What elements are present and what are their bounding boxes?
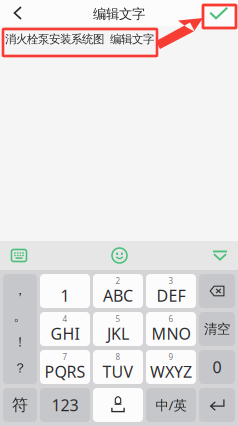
- button[interactable]: 9: [146, 350, 196, 384]
- staticText: PQRS: [44, 361, 85, 382]
- button[interactable]: 3: [146, 274, 196, 308]
- staticText: 0: [212, 356, 221, 378]
- staticText: JKL: [107, 323, 129, 344]
- staticText: 。: [13, 308, 26, 324]
- button[interactable]: [40, 274, 90, 308]
- staticText: DEF: [156, 285, 185, 306]
- staticText: 9: [168, 352, 173, 362]
- staticText: 符: [12, 395, 28, 415]
- button[interactable]: Hide keyboard: [202, 241, 238, 270]
- button[interactable]: Done: [200, 0, 238, 26]
- staticText: 123: [51, 394, 78, 416]
- button[interactable]: ，: [3, 274, 37, 384]
- staticText: GHI: [50, 323, 79, 344]
- button[interactable]: 清空: [199, 312, 235, 346]
- staticText: ！: [13, 334, 26, 350]
- staticText: 中/英: [155, 396, 186, 414]
- staticText: TUV: [102, 361, 133, 382]
- button[interactable]: [199, 274, 235, 308]
- button[interactable]: 符: [3, 388, 37, 422]
- button[interactable]: Keyboard: [1, 241, 37, 270]
- staticText: 1: [60, 285, 69, 306]
- button[interactable]: [93, 388, 143, 422]
- staticText: 消火栓泵安装系统图 编辑文字: [5, 32, 154, 46]
- staticText: 8: [115, 352, 120, 362]
- button[interactable]: 4: [40, 312, 90, 346]
- staticText: 编辑文字: [93, 6, 145, 22]
- staticText: 4: [62, 314, 67, 324]
- button[interactable]: 中/英: [146, 388, 196, 422]
- staticText: WXYZ: [150, 361, 192, 382]
- button[interactable]: Back: [0, 0, 36, 26]
- button[interactable]: 6: [146, 312, 196, 346]
- button[interactable]: Emoji: [101, 241, 137, 270]
- button[interactable]: 8: [93, 350, 143, 384]
- staticText: 2: [115, 276, 120, 286]
- button[interactable]: 0: [199, 350, 235, 384]
- button[interactable]: [199, 388, 235, 422]
- staticText: MNO: [151, 323, 190, 344]
- staticText: 7: [62, 352, 67, 362]
- staticText: ABC: [103, 285, 133, 306]
- button[interactable]: 7: [40, 350, 90, 384]
- staticText: ？: [13, 360, 26, 376]
- button[interactable]: 2: [93, 274, 143, 308]
- staticText: 清空: [204, 321, 230, 337]
- button[interactable]: 5: [93, 312, 143, 346]
- button[interactable]: 123: [40, 388, 90, 422]
- staticText: ，: [13, 282, 26, 298]
- staticText: 5: [115, 314, 120, 324]
- staticText: 3: [168, 276, 173, 286]
- staticText: 6: [168, 314, 173, 324]
